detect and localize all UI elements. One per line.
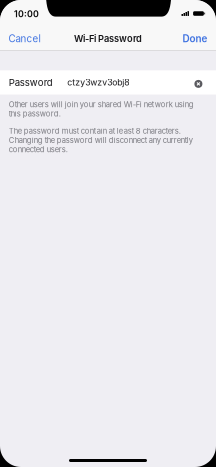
button[interactable]: Clear text [194, 78, 202, 86]
staticText: Wi-Fi Password [74, 33, 142, 44]
staticText: ctzy3wzv3obj8 [67, 77, 129, 88]
button[interactable]: Cancel [0, 24, 49, 50]
button[interactable]: Done [174, 24, 216, 50]
staticText: Password [9, 77, 53, 88]
staticText: 10:00 [14, 9, 39, 19]
staticText: Cancel [9, 33, 41, 45]
staticText: Other users will join your shared Wi-Fi … [9, 100, 194, 118]
staticText: Done [182, 33, 207, 45]
staticText: The password must contain at least 8 cha… [9, 126, 193, 154]
